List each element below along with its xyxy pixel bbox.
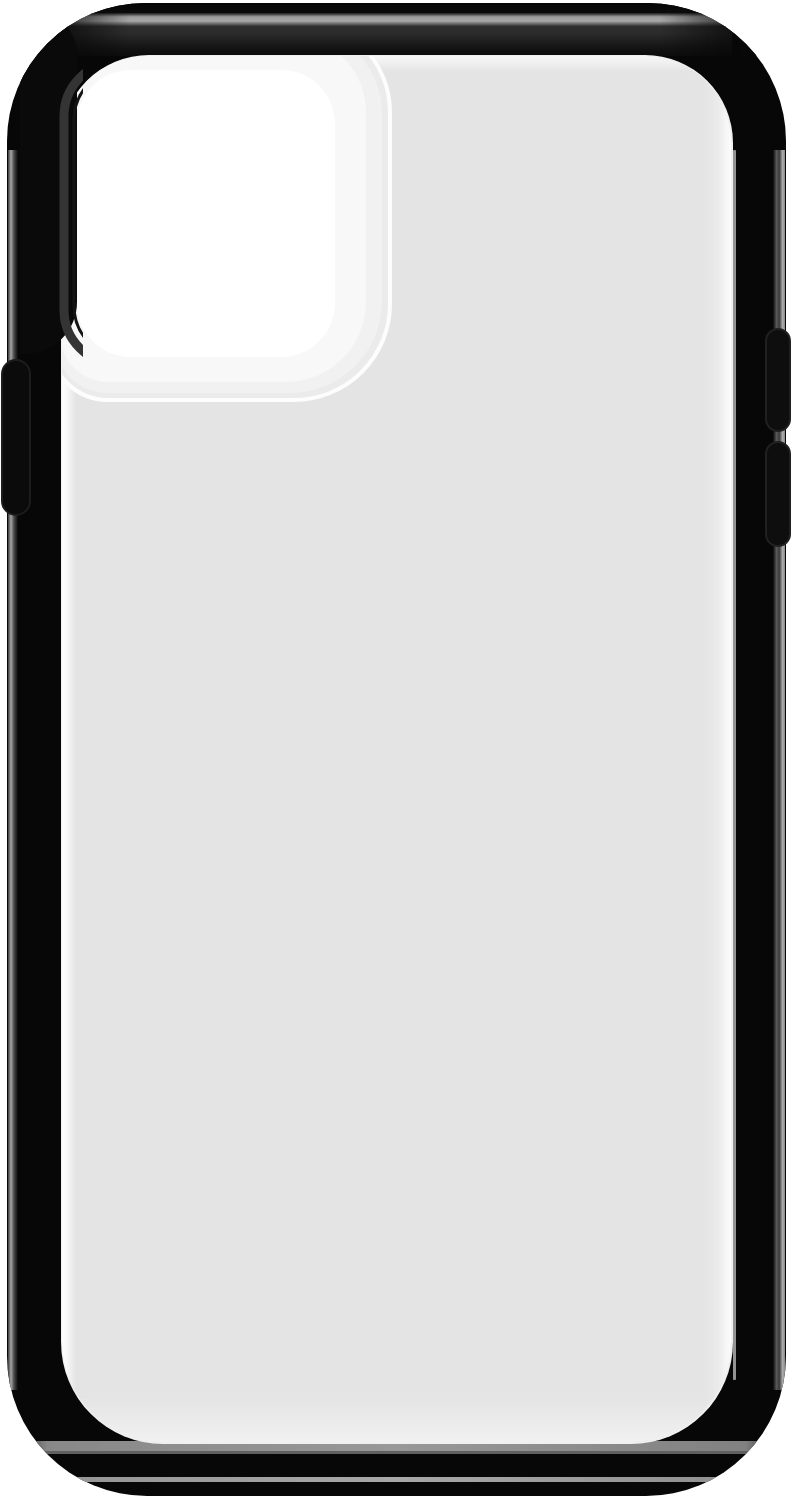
button[interactable]: Camera cut-out <box>62 36 392 400</box>
button[interactable]: Volume down <box>748 440 793 547</box>
button[interactable]: Volume up <box>748 327 793 432</box>
button[interactable]: Ring silent switch <box>0 358 44 517</box>
